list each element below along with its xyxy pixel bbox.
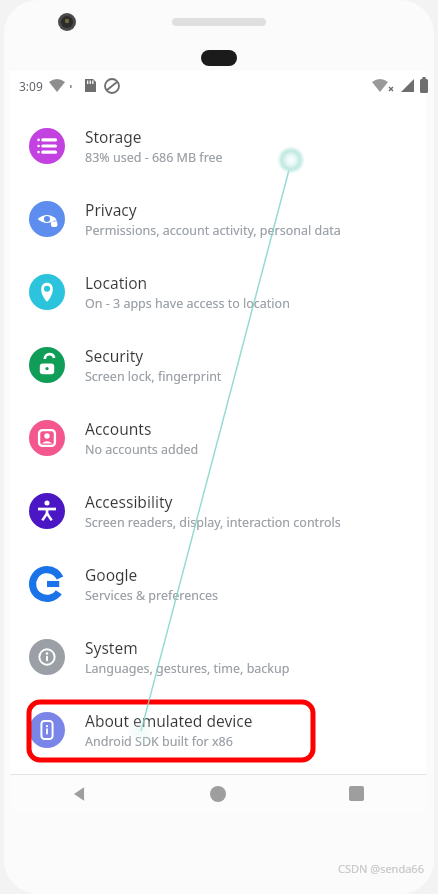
button[interactable]: Recents <box>287 775 426 812</box>
button[interactable]: Home <box>148 775 287 812</box>
button[interactable]: System <box>10 620 426 693</box>
staticText: Accounts <box>85 418 152 439</box>
button[interactable]: Privacy <box>10 182 426 255</box>
staticText: Screen readers, display, interaction con… <box>85 514 341 531</box>
button[interactable]: Security <box>10 328 426 401</box>
staticText: 3:09 <box>19 78 43 94</box>
staticText: Location <box>85 272 148 293</box>
staticText: Android SDK built for x86 <box>85 733 233 750</box>
button[interactable]: Storage <box>10 109 426 182</box>
staticText: Security <box>85 345 144 366</box>
staticText: Storage <box>85 126 142 147</box>
staticText: Permissions, account activity, personal … <box>85 222 341 239</box>
staticText: No accounts added <box>85 441 199 458</box>
button[interactable]: Google <box>10 547 426 620</box>
staticText: CSDN @senda66 <box>338 861 424 876</box>
staticText: Google <box>85 564 138 585</box>
staticText: System <box>85 637 138 658</box>
button[interactable]: Back <box>10 775 148 812</box>
staticText: Privacy <box>85 199 137 220</box>
staticText: On - 3 apps have access to location <box>85 295 290 312</box>
staticText: Screen lock, fingerprint <box>85 368 222 385</box>
staticText: Languages, gestures, time, backup <box>85 660 290 677</box>
button[interactable]: Location <box>10 255 426 328</box>
staticText: Accessibility <box>85 491 173 512</box>
staticText: Services & preferences <box>85 587 219 604</box>
button[interactable]: About emulated device <box>10 693 426 766</box>
button[interactable]: Accounts <box>10 401 426 474</box>
button[interactable]: Accessibility <box>10 474 426 547</box>
staticText: About emulated device <box>85 710 253 731</box>
staticText: 83% used - 686 MB free <box>85 149 223 166</box>
